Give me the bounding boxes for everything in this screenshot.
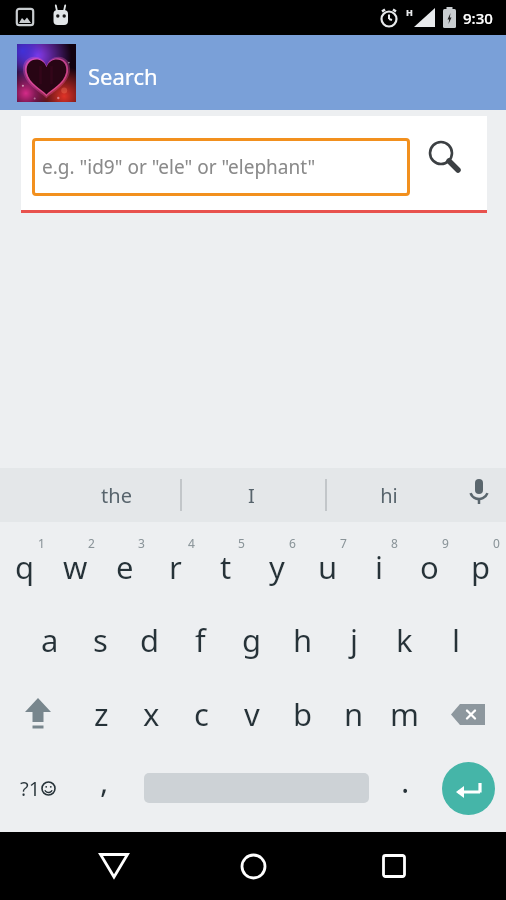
staticText: Search [88, 61, 158, 91]
staticText: w [63, 546, 88, 588]
staticText: 3 [138, 535, 145, 551]
button[interactable]: 4 [150, 530, 200, 598]
button[interactable]: v [226, 682, 277, 746]
button[interactable]: f [175, 608, 226, 672]
staticText: ?1 [20, 775, 41, 802]
staticText: d [140, 619, 160, 661]
staticText: 8 [391, 535, 398, 551]
staticText: s [93, 619, 108, 661]
button[interactable]: g [226, 608, 277, 672]
staticText: H [406, 6, 413, 18]
staticText: j [350, 619, 358, 661]
staticText: z [94, 693, 109, 735]
button[interactable]: 2 [50, 530, 100, 598]
button[interactable] [430, 682, 506, 746]
staticText: b [293, 693, 313, 735]
staticText: h [293, 619, 313, 661]
staticText: o [420, 546, 439, 588]
button[interactable]: m [379, 682, 430, 746]
button[interactable]: k [379, 608, 430, 672]
button[interactable]: z [76, 682, 126, 746]
button[interactable]: 5 [200, 530, 251, 598]
staticText: r [169, 546, 182, 588]
staticText: e [116, 546, 134, 588]
button[interactable]: d [125, 608, 175, 672]
staticText: 1 [38, 535, 45, 551]
staticText: p [471, 546, 491, 588]
button[interactable]: I [215, 468, 287, 522]
button[interactable] [442, 762, 495, 815]
staticText: , [100, 760, 109, 802]
staticText: n [344, 693, 364, 735]
staticText: 9 [442, 535, 449, 551]
button[interactable]: j [328, 608, 379, 672]
button[interactable]: b [277, 682, 328, 746]
staticText: y [269, 546, 285, 588]
staticText: i [375, 546, 383, 588]
staticText: 2 [88, 535, 95, 551]
button[interactable]: 6 [251, 530, 302, 598]
staticText: m [390, 693, 419, 735]
button[interactable] [382, 854, 406, 878]
button[interactable]: 9 [404, 530, 455, 598]
staticText: 4 [188, 535, 195, 551]
button[interactable]: the [80, 468, 152, 522]
button[interactable]: s [75, 608, 125, 672]
button[interactable] [240, 853, 267, 880]
staticText: . [401, 760, 410, 802]
button[interactable]: h [277, 608, 328, 672]
staticText: the [101, 482, 132, 509]
staticText: 7 [340, 535, 347, 551]
staticText: q [15, 546, 35, 588]
staticText: x [143, 693, 160, 735]
button[interactable]: 3 [100, 530, 150, 598]
staticText: I [248, 482, 255, 509]
button[interactable]: x [126, 682, 176, 746]
staticText: e.g. "id9" or "ele" or "elephant" [42, 154, 316, 180]
button[interactable]: ?1 [0, 756, 76, 820]
staticText: 0 [493, 535, 500, 551]
button[interactable]: n [328, 682, 379, 746]
staticText: l [452, 619, 460, 661]
button[interactable] [132, 756, 380, 820]
staticText: 6 [289, 535, 296, 551]
staticText: u [318, 546, 338, 588]
staticText: v [244, 693, 260, 735]
button[interactable] [464, 478, 494, 512]
staticText: 9:30 [463, 8, 493, 28]
staticText: c [194, 693, 209, 735]
button[interactable]: hi [353, 468, 425, 522]
button[interactable] [0, 682, 76, 746]
button[interactable]: a [25, 608, 75, 672]
button[interactable]: 7 [302, 530, 353, 598]
staticText: t [220, 546, 232, 588]
button[interactable] [99, 853, 129, 879]
button[interactable]: c [176, 682, 226, 746]
staticText: k [396, 619, 413, 661]
button[interactable]: e.g. "id9" or "ele" or "elephant" [32, 138, 410, 196]
staticText: hi [380, 482, 398, 509]
button[interactable]: 8 [353, 530, 404, 598]
button[interactable]: 1 [0, 530, 50, 598]
button[interactable]: , [76, 756, 132, 820]
staticText: f [195, 619, 206, 661]
button[interactable] [422, 137, 462, 177]
staticText: 5 [238, 535, 245, 551]
staticText: g [242, 619, 262, 661]
button[interactable]: l [430, 608, 481, 672]
button[interactable]: 0 [455, 530, 506, 598]
staticText: a [41, 619, 59, 661]
button[interactable]: . [380, 756, 430, 820]
